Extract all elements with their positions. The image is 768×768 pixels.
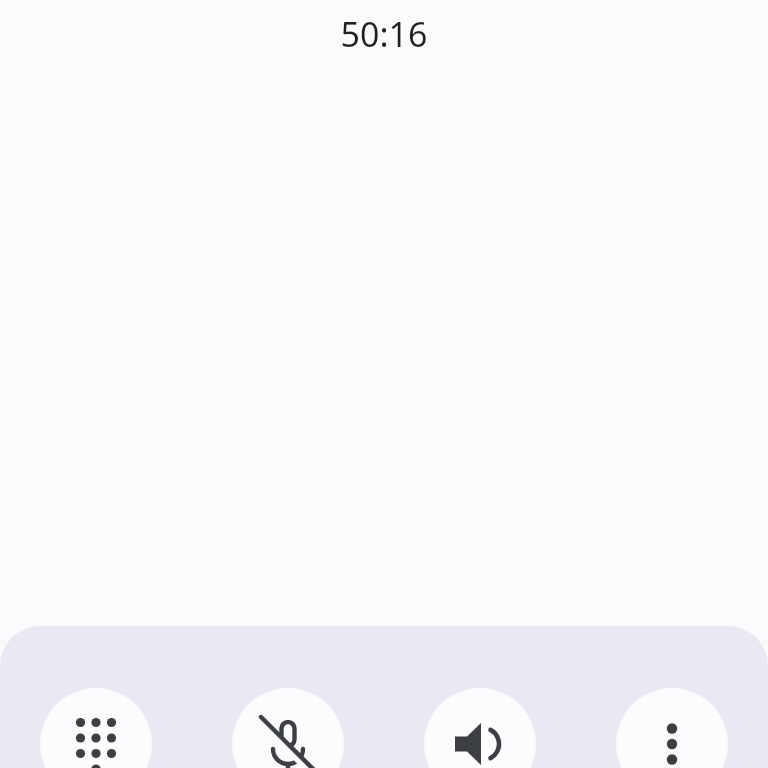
button[interactable]: Mute [232,688,344,768]
button[interactable]: Dialpad [40,688,152,768]
button[interactable]: Speaker [424,688,536,768]
button[interactable]: More options [616,688,728,768]
